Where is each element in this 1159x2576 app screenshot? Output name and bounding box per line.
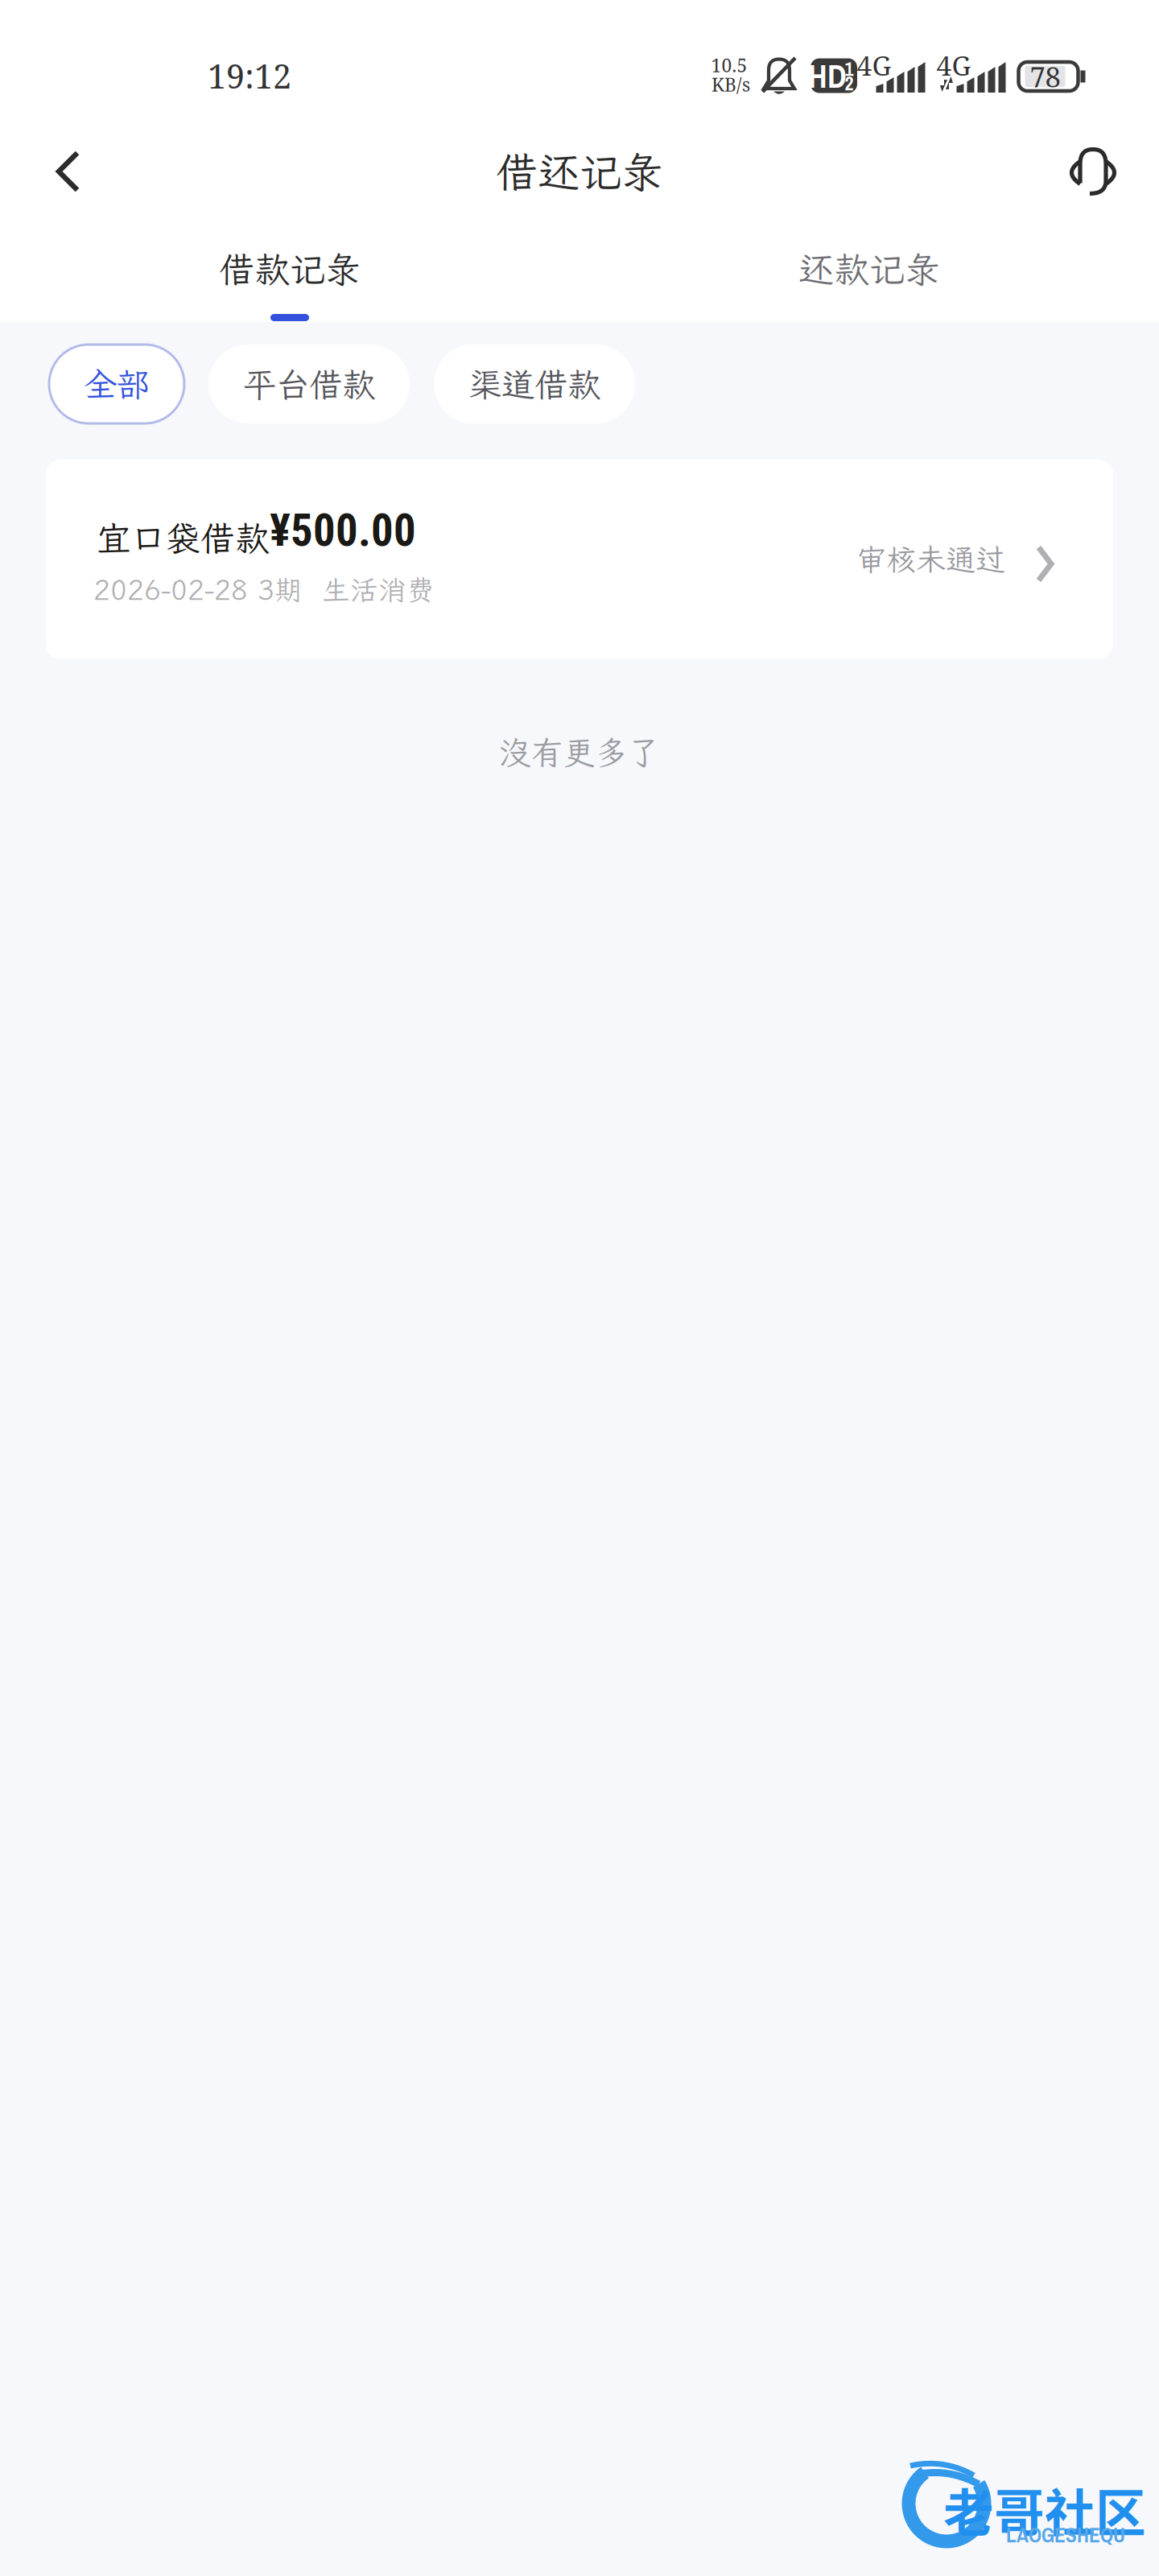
button[interactable]: 宜口袋借款¥500.00 [46,460,1113,658]
staticText: 没有更多了 [499,731,660,773]
staticText: 4G [936,47,971,83]
staticText: 全部 [84,362,150,406]
button[interactable]: 借款记录 [0,222,579,322]
staticText: 2 [845,70,854,96]
button[interactable]: 还款记录 [579,222,1159,322]
staticText: 借还记录 [496,144,663,199]
staticText: 1 [845,56,854,82]
button[interactable]: Customer service [1038,124,1159,219]
staticText: 宜口袋借款¥500.00 [97,506,416,560]
staticText: 10.5 [711,53,747,78]
staticText: LAOGESHEQU [1006,2521,1125,2549]
staticText: 渠道借款 [468,362,600,406]
staticText: 老哥社区 [943,2473,1146,2546]
button[interactable]: 平台借款 [208,345,410,423]
staticText: 78 [1030,57,1060,95]
button[interactable]: Back [0,123,113,220]
button[interactable]: 全部 [49,345,184,423]
staticText: 2026-02-28 3期 生活消费 [93,571,435,608]
staticText: 审核未通过 [856,539,1005,579]
staticText: 19:12 [208,53,291,98]
staticText: HD [808,54,847,98]
staticText: 平台借款 [243,362,375,406]
staticText: KB/s [711,72,750,97]
staticText: 还款记录 [798,246,940,292]
staticText: 借款记录 [219,246,361,292]
staticText: 4G [857,47,891,83]
button[interactable]: 渠道借款 [434,345,635,423]
